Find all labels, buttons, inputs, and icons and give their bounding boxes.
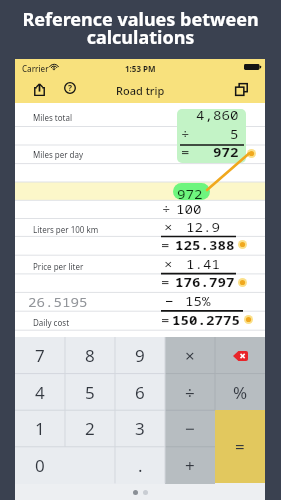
staticText: ×	[164, 255, 173, 273]
staticText: 4	[35, 381, 45, 404]
staticText: =	[181, 143, 190, 161]
staticText: 972	[213, 143, 239, 161]
staticText: 26.5195	[28, 293, 88, 311]
button[interactable]: Share	[28, 78, 50, 100]
staticText: 3	[135, 417, 145, 440]
staticText: 8	[85, 344, 95, 367]
button[interactable]: Delete	[215, 337, 265, 374]
staticText: =	[161, 273, 170, 291]
button[interactable]: 5	[65, 374, 115, 411]
staticText: ÷	[181, 125, 190, 143]
staticText: Daily cost	[33, 317, 70, 328]
staticText: Road trip	[116, 83, 165, 98]
button[interactable]: 7	[15, 337, 65, 374]
button[interactable]: 1	[15, 410, 65, 447]
staticText: Miles per day	[33, 149, 84, 160]
button[interactable]: 4	[15, 374, 65, 411]
staticText: .	[138, 454, 143, 477]
button[interactable]: 9	[115, 337, 165, 374]
button[interactable]: ÷	[165, 374, 215, 411]
button[interactable]: ×	[165, 337, 215, 374]
button[interactable]: %	[215, 374, 265, 411]
button[interactable]: 2	[65, 410, 115, 447]
staticText: ×	[164, 218, 173, 236]
button[interactable]: Help	[59, 77, 81, 99]
button[interactable]: +	[165, 447, 215, 484]
button[interactable]: =	[215, 410, 265, 483]
staticText: 5	[230, 125, 239, 143]
staticText: ?	[68, 82, 73, 94]
staticText: 12.9	[186, 218, 221, 236]
staticText: Reference values between calculations	[0, 7, 281, 49]
staticText: 4,860	[196, 106, 240, 124]
staticText: −	[185, 417, 195, 440]
other: Delete	[233, 351, 248, 361]
staticText: 1.41	[186, 255, 221, 273]
staticText: 0	[35, 454, 45, 477]
staticText: ÷	[162, 200, 171, 218]
button[interactable]: 0	[15, 447, 115, 484]
staticText: 125.388	[175, 236, 235, 254]
staticText: +	[185, 454, 195, 477]
button[interactable]: 3	[115, 410, 165, 447]
staticText: Liters per 100 km	[33, 224, 99, 235]
staticText: ÷	[185, 381, 195, 404]
button[interactable]: −	[165, 410, 215, 447]
staticText: =	[161, 311, 170, 329]
staticText: 7	[35, 344, 45, 367]
staticText: 15%	[185, 292, 211, 310]
staticText: Carrier	[22, 63, 49, 74]
button[interactable]: 6	[115, 374, 165, 411]
staticText: 9	[135, 344, 145, 367]
staticText: ×	[185, 344, 195, 367]
staticText: =	[161, 236, 170, 254]
button[interactable]: Duplicate	[230, 78, 252, 100]
staticText: %	[233, 381, 248, 404]
staticText: 972	[177, 185, 203, 200]
staticText: 1:53 PM	[125, 63, 156, 74]
staticText: 150.2775	[172, 311, 241, 329]
staticText: 6	[135, 381, 145, 404]
button[interactable]: .	[115, 447, 165, 484]
staticText: 176.797	[175, 273, 235, 291]
staticText: Price per liter	[33, 261, 84, 272]
staticText: 2	[85, 417, 95, 440]
staticText: 1	[35, 417, 45, 440]
button[interactable]: 8	[65, 337, 115, 374]
staticText: 100	[176, 200, 202, 218]
staticText: −	[165, 292, 174, 310]
staticText: Miles total	[33, 112, 72, 123]
staticText: =	[235, 435, 245, 458]
staticText: 5	[85, 381, 95, 404]
